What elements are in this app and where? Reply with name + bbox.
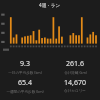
staticText: 65.4 [18,78,32,88]
staticText: 4週・ラン [39,2,61,8]
staticText: 9.3 [20,59,30,69]
button[interactable]: 9.3 [0,59,50,74]
staticText: 合計カロリー [64,89,86,94]
staticText: 一週間の平均歩数 (km) [6,89,44,94]
button[interactable]: 261.6 [50,59,100,74]
staticText: 一日の平均歩数 (km) [8,70,42,75]
button[interactable]: 4週・ラン [0,0,100,10]
staticText: 261.6 [66,59,84,69]
staticText: 合計距離 (km) [64,70,87,75]
button[interactable]: 14,670 [50,78,100,93]
button[interactable]: 65.4 [0,78,50,93]
staticText: 14,670 [64,78,86,88]
